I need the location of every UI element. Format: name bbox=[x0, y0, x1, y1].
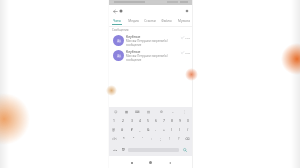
staticText: _ bbox=[139, 127, 141, 132]
staticText: абв bbox=[113, 148, 118, 151]
button[interactable]: ⌫ bbox=[183, 134, 192, 143]
button[interactable]: Чаты bbox=[109, 16, 125, 26]
staticText: 5 bbox=[147, 118, 149, 123]
button[interactable]: 9 bbox=[176, 116, 184, 125]
button[interactable]: Клубные bbox=[109, 48, 192, 63]
button[interactable]: ; bbox=[156, 134, 165, 143]
staticText: & bbox=[147, 127, 150, 132]
staticText: ₽ bbox=[131, 127, 133, 132]
button[interactable]: ) bbox=[176, 125, 184, 134]
button[interactable]: Pin bbox=[117, 7, 125, 15]
staticText: ⋮ bbox=[183, 110, 187, 114]
button[interactable]: - bbox=[152, 125, 160, 134]
button[interactable]: + bbox=[160, 125, 168, 134]
staticText: ; bbox=[160, 137, 161, 141]
button[interactable]: 3 bbox=[127, 116, 136, 125]
staticText: / bbox=[187, 127, 189, 132]
button[interactable]: Keyboard option bbox=[155, 107, 167, 116]
staticText: 9 bbox=[179, 118, 181, 123]
button[interactable]: & bbox=[144, 125, 152, 134]
button[interactable]: " bbox=[129, 134, 138, 143]
button[interactable]: Keyboard option bbox=[121, 107, 132, 116]
staticText: ( bbox=[171, 127, 173, 132]
staticText: 4 bbox=[139, 118, 141, 123]
staticText: 7 bbox=[163, 118, 165, 123]
button[interactable]: ? bbox=[174, 134, 183, 143]
button[interactable]: 8 bbox=[168, 116, 176, 125]
button[interactable]: 5 bbox=[144, 116, 152, 125]
staticText: – bbox=[172, 110, 174, 114]
button[interactable]: _ bbox=[136, 125, 144, 134]
staticText: 14:2 bbox=[185, 36, 190, 39]
button[interactable]: Home bbox=[146, 158, 155, 167]
staticText: 1 bbox=[113, 118, 115, 123]
staticText: # bbox=[121, 127, 124, 132]
button[interactable]: 2 bbox=[118, 116, 127, 125]
staticText: ▦ bbox=[125, 110, 129, 114]
staticText: ? bbox=[178, 137, 180, 141]
button[interactable]: ( bbox=[168, 125, 176, 134]
button[interactable]: Музыка bbox=[175, 16, 192, 26]
button[interactable]: 6 bbox=[152, 116, 160, 125]
button[interactable]: ₽ bbox=[127, 125, 136, 134]
staticText: Медиа bbox=[128, 19, 139, 23]
staticText: ) bbox=[179, 127, 181, 132]
staticText: ⌨ bbox=[135, 110, 140, 114]
staticText: @ bbox=[112, 127, 116, 132]
button[interactable]: ' bbox=[138, 134, 147, 143]
staticText: 2 bbox=[122, 118, 124, 123]
staticText: : bbox=[151, 137, 152, 141]
staticText: Сообщения bbox=[112, 28, 129, 32]
button[interactable]: Back bbox=[127, 158, 136, 167]
staticText: " bbox=[133, 137, 135, 141]
button[interactable]: More options bbox=[182, 6, 191, 15]
staticText: Ссылки bbox=[144, 19, 156, 23]
button[interactable]: * bbox=[119, 134, 129, 143]
staticText: Чаты bbox=[113, 19, 121, 23]
button[interactable]: Keyboard option bbox=[167, 107, 179, 116]
staticText: ! bbox=[169, 137, 170, 141]
staticText: ▤ bbox=[147, 110, 151, 114]
button[interactable]: / bbox=[184, 125, 192, 134]
staticText: Музыка bbox=[178, 19, 190, 23]
button[interactable]: # bbox=[118, 125, 127, 134]
staticText: 6 bbox=[155, 118, 157, 123]
staticText: 12:0 bbox=[185, 51, 190, 54]
button[interactable]: Клубные bbox=[109, 33, 192, 48]
button[interactable]: абв bbox=[111, 143, 119, 156]
button[interactable]: =\< bbox=[109, 134, 119, 143]
staticText: ⌫ bbox=[185, 137, 190, 141]
button[interactable]: Search bbox=[179, 143, 190, 156]
button[interactable]: 4 bbox=[136, 116, 144, 125]
button[interactable]: Ссылки bbox=[141, 16, 158, 26]
staticText: Файлы bbox=[161, 19, 172, 23]
staticText: 0 bbox=[187, 118, 189, 123]
button[interactable]: Медиа bbox=[125, 16, 141, 26]
button[interactable]: Recents bbox=[165, 158, 174, 167]
button[interactable]: @ bbox=[109, 125, 118, 134]
button[interactable]: Back bbox=[111, 7, 119, 15]
button[interactable]: ! bbox=[165, 134, 174, 143]
staticText: Массаж Петрушки закрепил(а) bbox=[126, 54, 168, 58]
staticText: ⚙ bbox=[160, 110, 163, 114]
button[interactable]: 0 bbox=[184, 116, 192, 125]
staticText: Массаж Петрушки закрепил(а) bbox=[126, 39, 168, 43]
button[interactable]: Keyboard option bbox=[143, 107, 155, 116]
staticText: сообщение bbox=[126, 58, 142, 62]
button[interactable]: Keyboard option bbox=[110, 107, 121, 116]
button[interactable]: Файлы bbox=[158, 16, 175, 26]
staticText: 3 bbox=[131, 118, 133, 123]
button[interactable]: Emoji bbox=[119, 143, 128, 156]
button[interactable]: 7 bbox=[160, 116, 168, 125]
staticText: Клубные bbox=[126, 49, 141, 53]
staticText: Клубные bbox=[126, 34, 141, 38]
staticText: сообщение bbox=[126, 43, 142, 47]
staticText: + bbox=[163, 127, 165, 132]
button[interactable]: 1 bbox=[109, 116, 118, 125]
staticText: =\< bbox=[112, 137, 117, 141]
button[interactable]: : bbox=[147, 134, 156, 143]
button[interactable]: Keyboard option bbox=[132, 107, 143, 116]
staticText: ' bbox=[142, 137, 143, 141]
